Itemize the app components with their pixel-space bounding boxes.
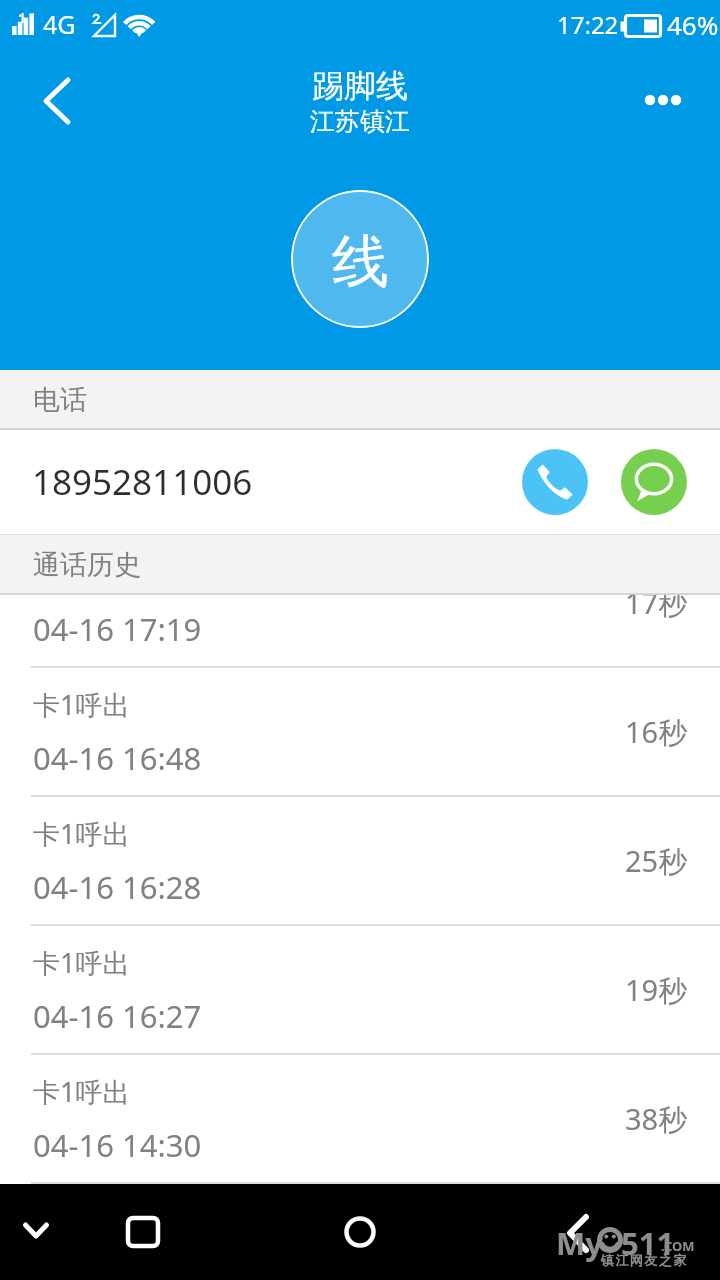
button[interactable]: 卡1呼出 xyxy=(0,595,720,668)
button[interactable]: Hide keyboard xyxy=(0,1196,72,1268)
staticText: 18952811006 xyxy=(32,458,522,506)
button[interactable]: Home xyxy=(324,1196,396,1268)
staticText: 卡1呼出 xyxy=(33,686,130,723)
staticText: 04-16 16:48 xyxy=(33,737,202,779)
staticText: 通话历史 xyxy=(33,548,141,582)
staticText: 4G xyxy=(43,7,76,41)
button[interactable]: More options xyxy=(628,64,720,156)
staticText: .COM xyxy=(661,1237,695,1255)
button[interactable]: 18952811006 xyxy=(0,430,720,534)
staticText: 25秒 xyxy=(625,841,688,881)
staticText: 04-16 17:19 xyxy=(33,608,202,650)
staticText: 04-16 14:30 xyxy=(33,1124,202,1166)
button[interactable]: Back xyxy=(21,64,93,136)
staticText: 17秒 xyxy=(625,595,688,623)
staticText: 17:22 xyxy=(557,8,619,41)
staticText: 16秒 xyxy=(625,712,688,752)
button[interactable]: 卡1呼出 xyxy=(0,926,720,1055)
button[interactable]: 卡1呼出 xyxy=(0,1055,720,1184)
staticText: 镇江网友之家 xyxy=(600,1252,687,1268)
staticText: 19秒 xyxy=(625,970,688,1010)
staticText: 卡1呼出 xyxy=(33,944,130,981)
staticText: 踢脚线 xyxy=(312,66,408,106)
staticText: 38秒 xyxy=(625,1099,688,1139)
button[interactable]: 卡1呼出 xyxy=(0,797,720,926)
button[interactable]: Back xyxy=(545,1198,617,1270)
button[interactable]: Call xyxy=(522,449,588,515)
staticText: 04-16 16:27 xyxy=(33,995,202,1037)
staticText: 电话 xyxy=(33,383,87,417)
staticText: My xyxy=(556,1222,603,1264)
staticText: 511 xyxy=(621,1222,675,1264)
staticText: 04-16 16:28 xyxy=(33,866,202,908)
button[interactable]: Recent apps xyxy=(107,1196,179,1268)
button[interactable]: 线 xyxy=(291,190,429,328)
button[interactable]: Message xyxy=(621,449,687,515)
button[interactable]: 卡1呼出 xyxy=(0,668,720,797)
staticText: 卡1呼出 xyxy=(33,815,130,852)
staticText: 江苏镇江 xyxy=(310,106,410,137)
staticText: 46% xyxy=(667,7,719,42)
staticText: 线 xyxy=(332,226,389,298)
staticText: 卡1呼出 xyxy=(33,1073,130,1110)
